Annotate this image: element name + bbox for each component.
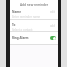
staticText: add <box>50 24 56 28</box>
staticText: edit <box>50 10 56 14</box>
button[interactable]: Name <box>10 9 58 20</box>
staticText: Select a contact <box>12 28 33 31</box>
staticText: Add new reminder <box>20 3 49 7</box>
button[interactable]: To <box>10 20 58 32</box>
staticText: To <box>12 23 16 27</box>
staticText: Name <box>12 10 21 14</box>
button[interactable]: Ring Alarm <box>10 32 58 45</box>
staticText: Ring Alarm <box>12 36 29 40</box>
other: Toggle alarm <box>50 36 56 40</box>
staticText: Enter reminder name <box>12 15 41 19</box>
